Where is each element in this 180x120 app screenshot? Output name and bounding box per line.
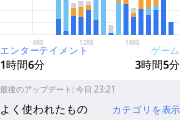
staticText: 12時 [79, 38, 94, 47]
staticText: 最後のアップデート: 今日 23:21 [0, 84, 116, 95]
staticText: 3時間5分 [135, 57, 180, 72]
staticText: 6時 [33, 38, 44, 47]
staticText: よく使われたもの [0, 103, 88, 116]
button[interactable]: カテゴリを表示 [112, 104, 180, 116]
staticText: カテゴリを表示 [112, 104, 180, 116]
staticText: 18時 [125, 38, 140, 47]
staticText: 1時間6分 [0, 57, 45, 72]
staticText: エンターテイメント [0, 45, 89, 56]
staticText: ゲーム [151, 45, 180, 56]
